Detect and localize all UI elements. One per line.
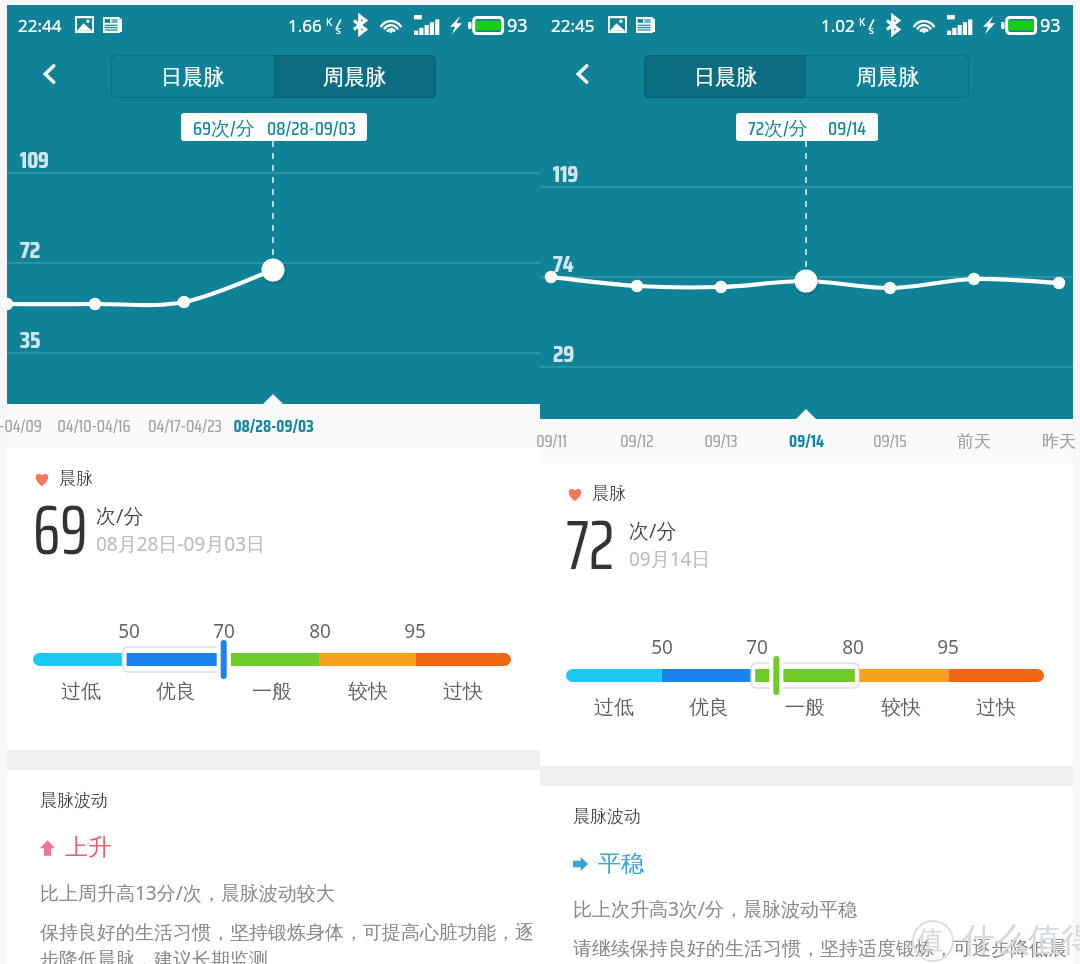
staticText: 晨脉波动 [573,806,641,827]
staticText: 值 [917,924,943,957]
staticText: 08/28-09/03 [233,413,314,440]
staticText: 80 [309,618,331,644]
button[interactable]: -04/09 [0,404,65,448]
staticText: K [326,15,333,29]
staticText: 过低 [61,679,101,704]
staticText: 04/17-04/23 [148,413,222,440]
staticText: 69 [33,475,88,585]
staticText: 119 [553,156,579,192]
staticText: 09/14 [828,113,867,141]
staticText: 72 [566,490,615,600]
staticText: 95 [404,618,426,644]
staticText: 请继续保持良好的生活习惯，坚持适度锻炼，可逐步降低晨 [573,937,1067,961]
staticText: -04/09 [0,413,42,440]
staticText: s [869,23,874,37]
staticText: 周晨脉 [323,64,386,90]
staticText: 09/15 [873,428,907,455]
staticText: 日晨脉 [161,64,224,90]
staticText: 保持良好的生活习惯，坚持锻炼身体，可提高心脏功能，逐 [40,921,534,945]
button[interactable]: 04/10-04/16 [49,404,139,448]
button[interactable]: 69次/分 [181,113,367,141]
button[interactable]: 前天 [929,419,1019,463]
staticText: 较快 [348,679,388,704]
staticText: 步降低晨脉，建议长期监测 [40,948,268,964]
button[interactable]: Back [27,45,73,103]
staticText: 08/28-09/03 [267,113,356,141]
staticText: 09/11 [536,428,567,455]
staticText: 22:45 [551,14,595,37]
staticText: 平稳 [598,849,644,878]
staticText: 前天 [957,431,991,452]
staticText: 日晨脉 [694,64,757,90]
staticText: 70 [746,634,768,660]
staticText: 04/10-04/16 [57,413,131,440]
button[interactable]: 72次/分 [736,113,878,141]
staticText: 次/分 [629,517,677,544]
button[interactable]: 04/17-04/23 [140,404,230,448]
staticText: 什么值得买 [962,919,1080,961]
staticText: 次/分 [96,502,144,529]
button[interactable]: 周晨脉 [806,55,969,98]
staticText: 72次/分 [748,113,808,141]
button[interactable]: 09/14 [761,419,851,463]
button[interactable]: 昨天 [1014,419,1080,463]
staticText: 上升 [65,833,111,862]
staticText: 93 [1040,13,1061,38]
staticText: 过快 [443,679,483,704]
button[interactable]: 08/28-09/03 [228,404,318,448]
button[interactable]: 09/13 [676,419,766,463]
staticText: K [859,15,866,29]
staticText: 70 [213,618,235,644]
staticText: 一般 [785,695,825,720]
staticText: 过快 [976,695,1016,720]
button[interactable]: 日晨脉 [111,55,273,98]
staticText: 80 [842,634,864,660]
staticText: 过低 [594,695,634,720]
staticText: 09/14 [789,428,824,455]
staticText: 72 [20,232,41,268]
button[interactable]: Back [560,45,606,103]
staticText: 08月28日-09月03日 [96,531,266,557]
staticText: 昨天 [1042,431,1076,452]
staticText: 50 [651,634,673,660]
button[interactable]: 09/15 [845,419,935,463]
staticText: 一般 [252,679,292,704]
staticText: 50 [118,618,140,644]
staticText: 比上次升高3次/分，晨脉波动平稳 [573,896,857,922]
staticText: 比上周升高13分/次，晨脉波动较大 [40,880,335,906]
button[interactable]: 周晨脉 [273,55,436,98]
staticText: 29 [553,336,575,372]
staticText: 69次/分 [193,113,255,141]
staticText: s [336,23,341,37]
staticText: 109 [20,142,49,178]
staticText: 93 [507,13,528,38]
staticText: 35 [20,322,41,358]
button[interactable]: 09/12 [592,419,682,463]
staticText: 优良 [689,695,729,720]
staticText: 1.66 [288,14,322,37]
staticText: 09/13 [704,428,738,455]
staticText: 优良 [156,679,196,704]
button[interactable]: 日晨脉 [644,55,806,98]
staticText: 95 [937,634,959,660]
button[interactable]: 09/11 [506,419,596,463]
staticText: 晨脉波动 [40,790,108,811]
staticText: 09/12 [620,428,654,455]
staticText: 1.02 [821,14,855,37]
staticText: 74 [553,246,574,282]
staticText: 22:44 [18,14,62,37]
staticText: 09月14日 [629,546,711,572]
staticText: 晨脉 [59,468,93,489]
staticText: 周晨脉 [856,64,919,90]
staticText: 晨脉 [592,483,626,504]
staticText: 较快 [881,695,921,720]
